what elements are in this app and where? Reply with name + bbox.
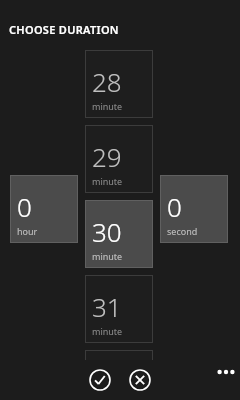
staticText: minute	[92, 100, 123, 112]
staticText: 30	[92, 214, 122, 249]
staticText: 0	[167, 189, 182, 224]
staticText: 28	[92, 64, 122, 99]
button[interactable]: 28	[85, 50, 153, 118]
button[interactable]: Cancel	[127, 367, 153, 393]
staticText: minute	[92, 175, 123, 187]
staticText: 31	[92, 289, 122, 324]
staticText: minute	[92, 250, 123, 262]
button[interactable]: 31	[85, 275, 153, 343]
staticText: 0	[17, 189, 32, 224]
button[interactable]: 30	[85, 200, 153, 268]
staticText: 29	[92, 139, 122, 174]
staticText: 32	[92, 364, 122, 399]
staticText: minute	[92, 325, 123, 337]
button[interactable]: Accept	[87, 367, 113, 393]
button[interactable]: 32	[85, 350, 153, 400]
staticText: CHOOSE DURATION	[9, 22, 119, 37]
staticText: second	[167, 225, 198, 237]
button[interactable]: 0	[10, 175, 78, 243]
staticText: hour	[17, 225, 38, 237]
button[interactable]: 0	[160, 175, 228, 243]
button[interactable]: 29	[85, 125, 153, 193]
button[interactable]: More options	[212, 362, 240, 382]
